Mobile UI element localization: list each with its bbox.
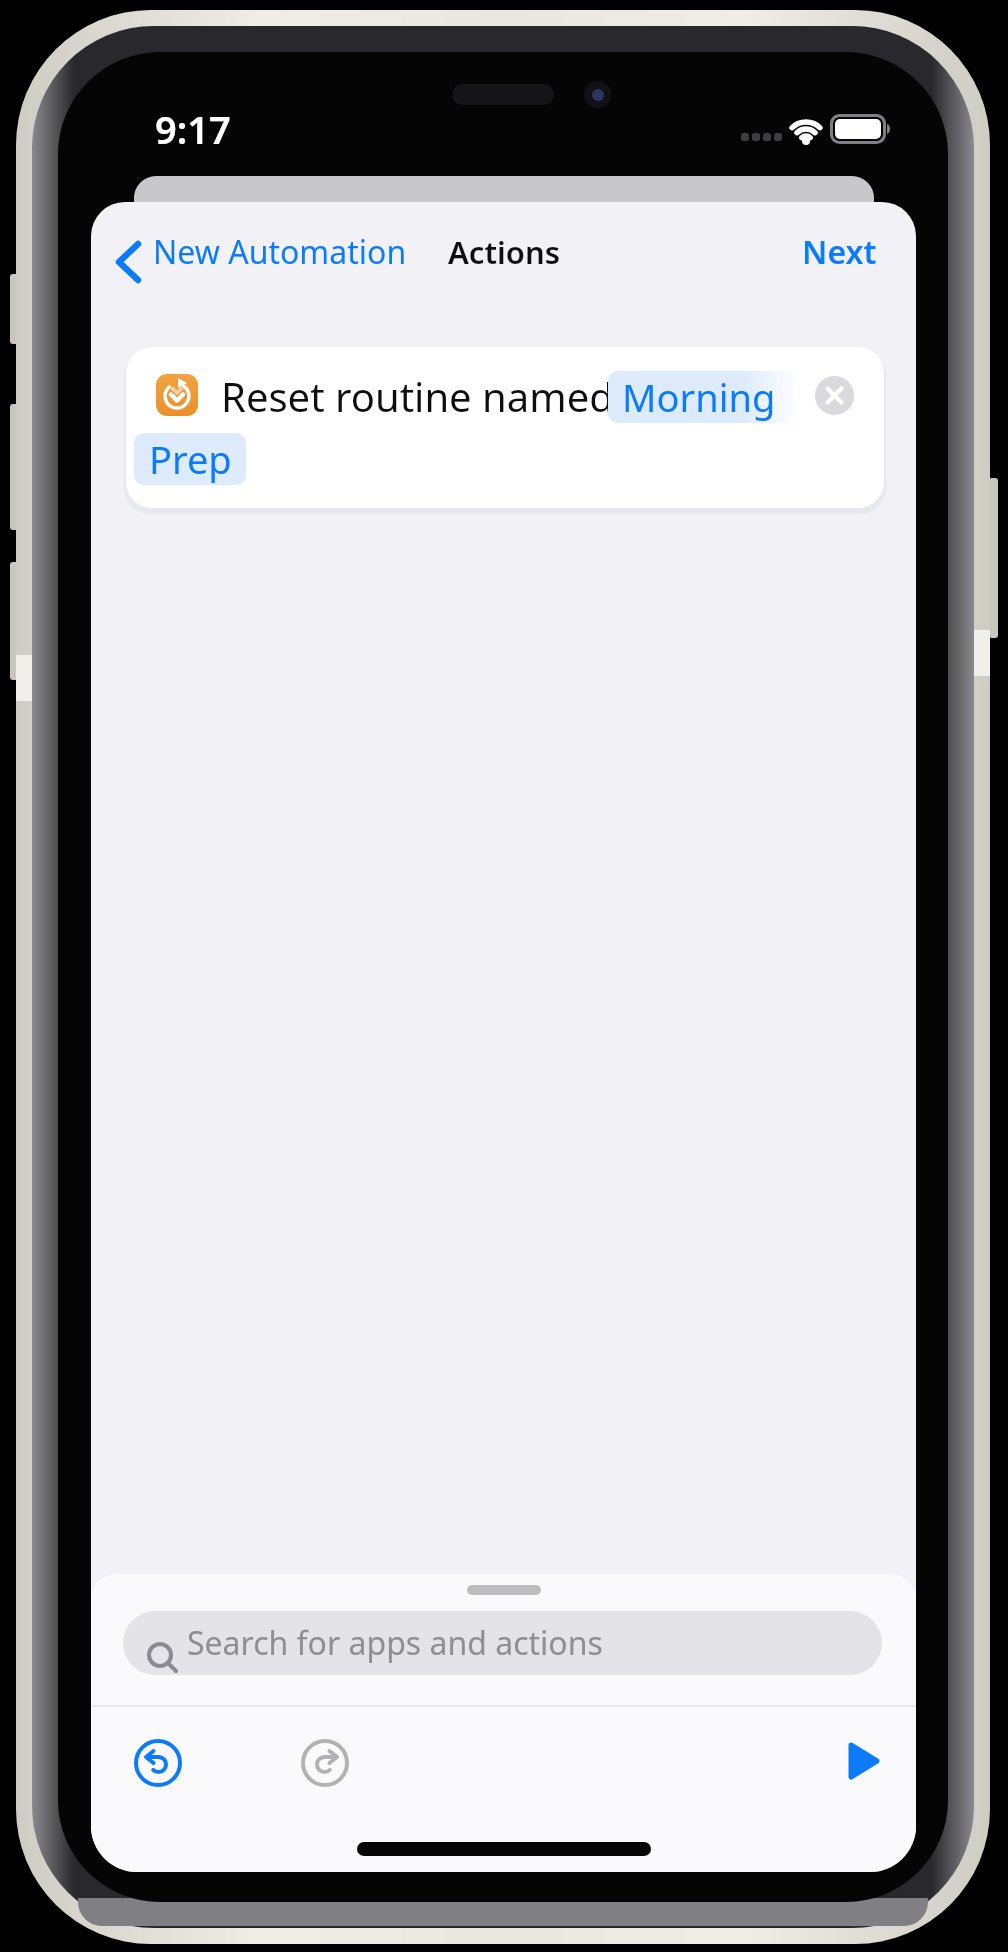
button[interactable]: Prep [134,433,246,485]
button[interactable] [297,1735,353,1791]
staticText: Actions [448,231,560,273]
button[interactable] [130,1735,186,1791]
staticText: Morning [622,371,776,423]
button[interactable]: New Automation [106,222,426,282]
staticText: 9:17 [155,103,231,155]
button[interactable]: Search for apps and actions [123,1611,882,1675]
button[interactable] [834,1733,890,1789]
staticText: Next [802,230,877,274]
staticText: New Automation [153,230,407,274]
staticText: Reset routine named [221,369,614,423]
button[interactable]: Morning [608,371,796,423]
staticText: Search for apps and actions [187,1621,603,1665]
button[interactable]: Reset routine named [126,347,884,508]
button[interactable]: Next [737,222,877,282]
staticText: Prep [149,433,232,485]
button[interactable] [815,376,854,415]
